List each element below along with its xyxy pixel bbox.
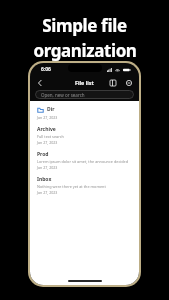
staticText: Archive xyxy=(37,126,56,133)
button[interactable]: More options xyxy=(124,78,133,87)
button[interactable]: Prod xyxy=(37,151,133,170)
staticText: Inbox xyxy=(37,176,52,183)
staticText: Prod xyxy=(37,151,49,158)
staticText: Nothing were there yet at the moment xyxy=(37,184,106,189)
staticText: Full text search xyxy=(37,134,64,139)
staticText: organization xyxy=(33,39,137,62)
staticText: Dir xyxy=(47,106,55,113)
button[interactable]: Back xyxy=(35,78,44,87)
staticText: Open, new or search xyxy=(41,92,85,98)
staticText: File list xyxy=(75,79,94,86)
staticText: Jan 27, 2023 xyxy=(37,190,58,195)
staticText: Simple file xyxy=(42,14,127,37)
button[interactable]: Layout xyxy=(108,78,117,87)
button[interactable]: Inbox xyxy=(37,176,133,195)
staticText: Jan 27, 2023 xyxy=(37,165,58,170)
button[interactable]: Archive xyxy=(37,126,133,145)
staticText: Lorem ipsum dolor sit amet, the announce… xyxy=(37,159,133,164)
staticText: 6:06 xyxy=(41,66,51,73)
staticText: Jan 27, 2023 xyxy=(37,115,58,120)
button[interactable]: Dir xyxy=(37,106,133,120)
staticText: Jan 27, 2023 xyxy=(37,140,58,145)
button[interactable]: Open, new or search xyxy=(35,90,134,99)
